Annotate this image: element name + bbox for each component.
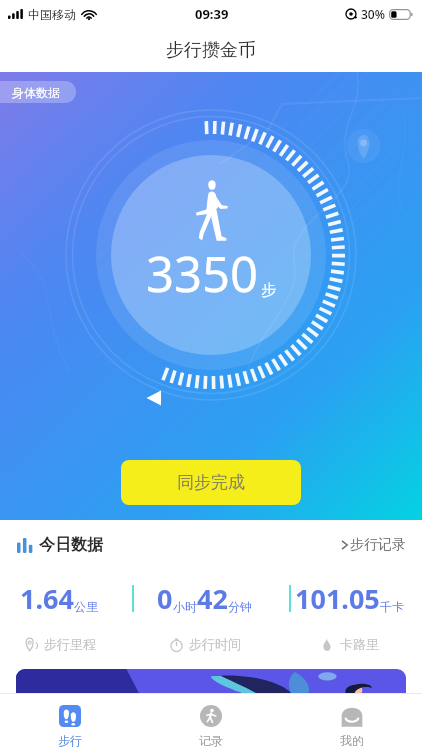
staticText: 同步完成 — [177, 472, 245, 493]
staticText: 分钟 — [228, 599, 252, 614]
staticText: 3350 — [146, 240, 259, 307]
staticText: 101.05 — [295, 580, 380, 617]
staticText: 中国移动 — [28, 7, 76, 22]
staticText: 我的 — [340, 733, 364, 748]
button[interactable]: 步行 — [0, 693, 140, 750]
button[interactable]: 同步完成 — [121, 460, 301, 505]
staticText: 小时 — [173, 599, 197, 614]
button[interactable]: 步行记录 — [339, 530, 408, 560]
staticText: 0 — [157, 580, 173, 617]
staticText: 步行里程 — [44, 636, 96, 652]
staticText: 步行时间 — [189, 636, 241, 652]
button[interactable]: 身体数据 — [0, 81, 76, 103]
staticText: 1.64 — [20, 580, 74, 617]
staticText: 千卡 — [380, 599, 404, 614]
button[interactable]: 我的 — [281, 693, 422, 750]
staticText: 步 — [261, 281, 276, 300]
staticText: 今日数据 — [39, 535, 103, 555]
button[interactable] — [16, 669, 406, 693]
staticText: 步行攒金币 — [166, 39, 256, 62]
staticText: 公里 — [74, 599, 98, 614]
staticText: 记录 — [199, 733, 223, 748]
staticText: 30% — [361, 6, 385, 22]
staticText: 42 — [197, 580, 228, 617]
staticText: 身体数据 — [12, 85, 60, 100]
button[interactable]: 记录 — [140, 693, 281, 750]
staticText: 步行记录 — [350, 536, 406, 554]
staticText: 09:39 — [195, 5, 229, 23]
staticText: 卡路里 — [340, 636, 379, 652]
staticText: 步行 — [58, 733, 82, 748]
